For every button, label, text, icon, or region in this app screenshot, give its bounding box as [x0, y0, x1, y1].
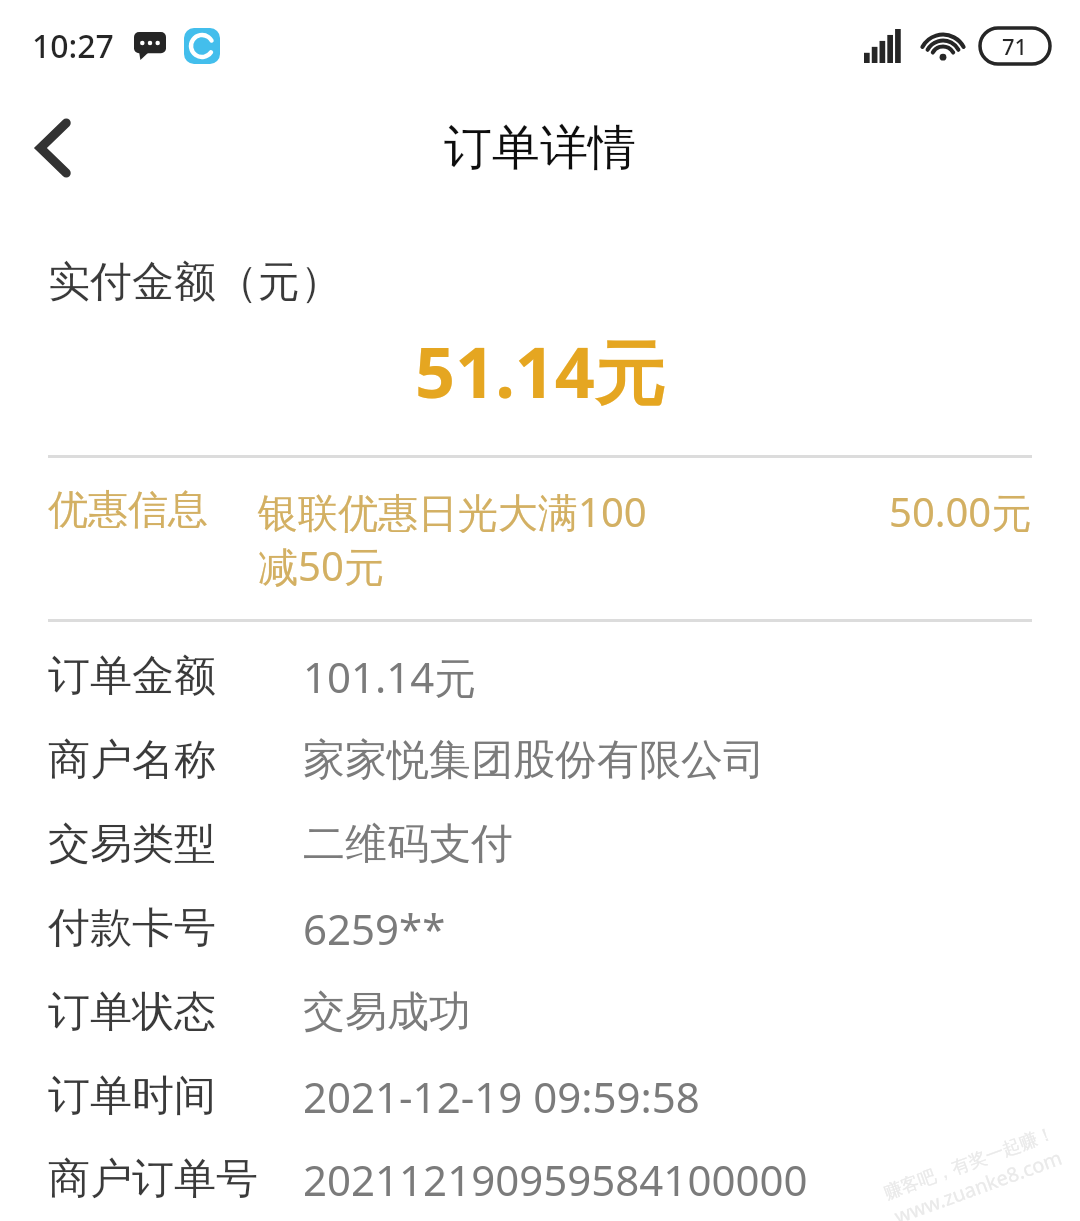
staticText: www.zuanke8.com: [891, 1144, 1066, 1221]
button[interactable]: 交易类型: [0, 802, 1080, 886]
staticText: 交易类型: [48, 818, 303, 871]
button[interactable]: 优惠信息: [0, 484, 1080, 593]
staticText: 51.14元: [415, 323, 665, 419]
staticText: 50.00元: [889, 484, 1032, 539]
staticText: 优惠信息: [48, 484, 208, 534]
staticText: 订单金额: [48, 650, 303, 703]
button[interactable]: 订单状态: [0, 970, 1080, 1054]
staticText: 订单时间: [48, 1070, 303, 1123]
staticText: 付款卡号: [48, 902, 303, 955]
staticText: 订单状态: [48, 986, 303, 1039]
staticText: 订单详情: [444, 118, 636, 178]
staticText: 10:27: [32, 24, 114, 68]
button[interactable]: 商户名称: [0, 718, 1080, 802]
button[interactable]: 订单金额: [0, 634, 1080, 718]
staticText: 实付金额（元）: [48, 256, 342, 309]
staticText: 2021-12-19 09:59:58: [303, 1068, 700, 1125]
staticText: 二维码支付: [303, 818, 513, 871]
staticText: 6259**: [303, 900, 446, 957]
button[interactable]: 商户订单号: [0, 1138, 1080, 1221]
staticText: 交易成功: [303, 986, 471, 1039]
staticText: 71: [1002, 31, 1028, 61]
button[interactable]: 付款卡号: [0, 886, 1080, 970]
staticText: 商户订单号: [48, 1153, 303, 1206]
button[interactable]: 订单时间: [0, 1054, 1080, 1138]
button[interactable]: Back: [12, 106, 96, 190]
staticText: 商户名称: [48, 734, 303, 787]
staticText: 赚客吧，有奖一起赚！: [881, 1122, 1058, 1205]
staticText: 银联优惠日光大满100减50元: [258, 484, 678, 593]
staticText: 101.14元: [303, 648, 477, 705]
staticText: 家家悦集团股份有限公司: [303, 734, 765, 787]
staticText: 202112190959584100000: [303, 1151, 808, 1208]
